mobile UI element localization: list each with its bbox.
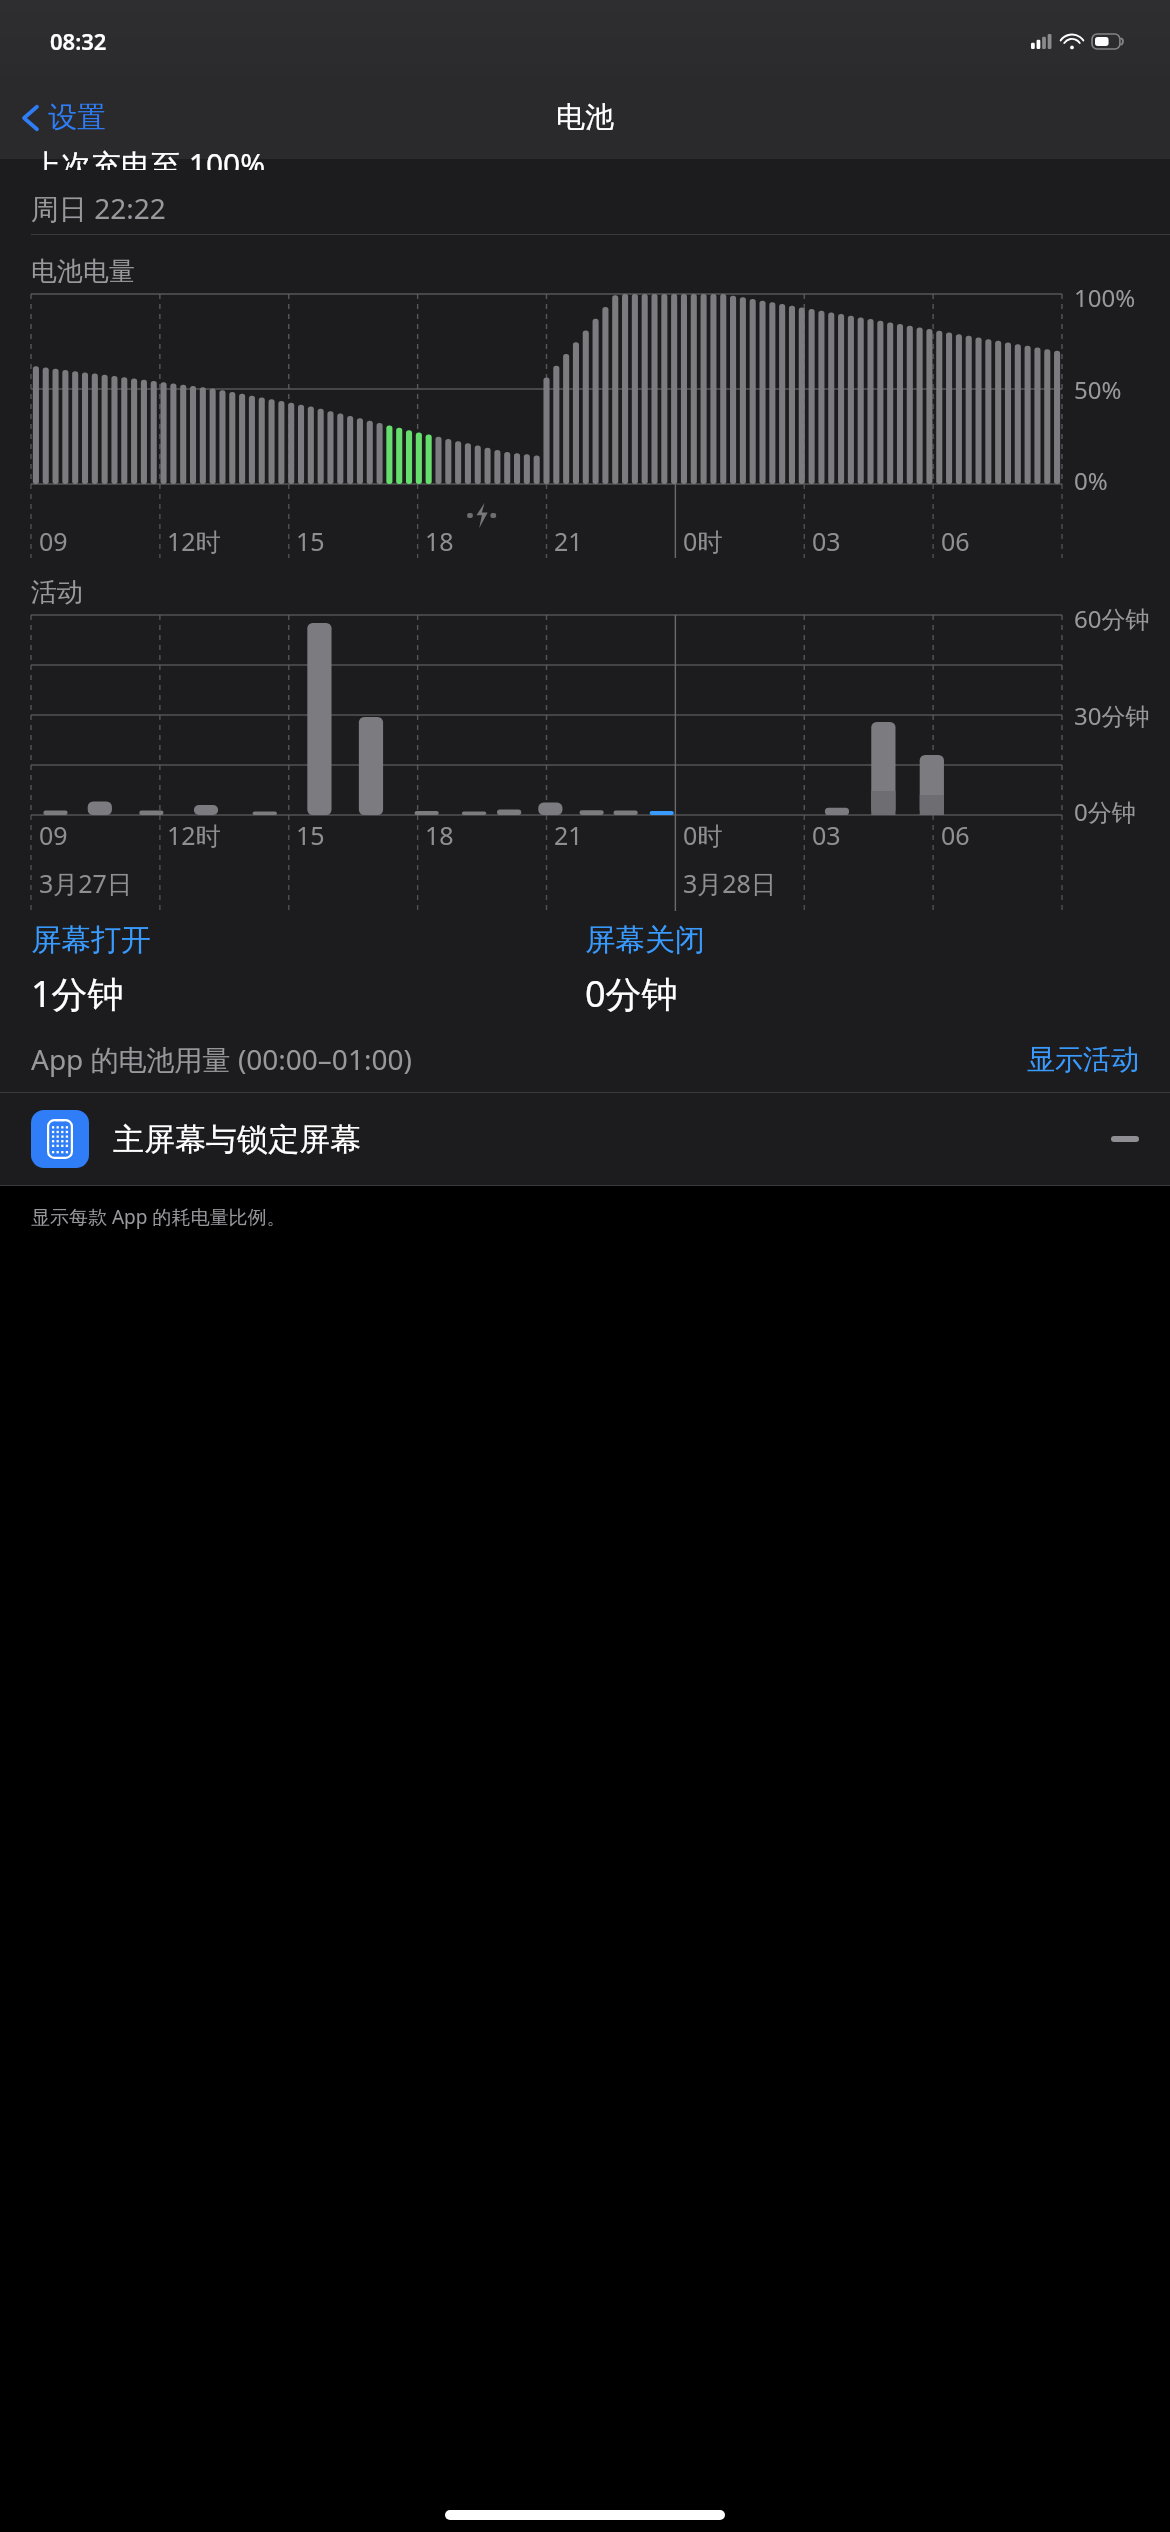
staticText: 主屏幕与锁定屏幕	[113, 1120, 361, 1159]
staticText: 06	[941, 818, 970, 852]
staticText: 03	[812, 818, 841, 852]
staticText: 15	[296, 524, 325, 558]
staticText: 100%	[1074, 281, 1136, 314]
staticText: 18	[425, 524, 454, 558]
button[interactable]: 主屏幕与锁定屏幕	[0, 1093, 1170, 1185]
staticText: 显示活动	[1027, 1042, 1139, 1077]
staticText: 电池	[556, 99, 614, 136]
staticText: 50%	[1074, 373, 1122, 406]
staticText: 0%	[1074, 464, 1108, 497]
staticText: 08:32	[50, 26, 107, 56]
staticText: 1分钟	[31, 969, 124, 1018]
other: 返回	[22, 103, 39, 133]
staticText: 0分钟	[585, 969, 678, 1018]
staticText: 09	[39, 524, 68, 558]
staticText: 0时	[683, 818, 723, 852]
staticText: 15	[296, 818, 325, 852]
button[interactable]: 屏幕关闭	[585, 921, 1139, 1018]
staticText: App 的电池用量 (00:00–01:00)	[31, 1040, 412, 1078]
staticText: 03	[812, 524, 841, 558]
staticText: 06	[941, 524, 970, 558]
staticText: 活动	[31, 576, 83, 609]
button[interactable]: 显示活动	[1027, 1042, 1139, 1077]
staticText: 12时	[167, 524, 221, 558]
staticText: 显示每款 App 的耗电量比例。	[31, 1204, 286, 1230]
button[interactable]: 返回	[0, 91, 120, 144]
staticText: 30分钟	[1074, 699, 1150, 732]
staticText: 3月27日	[39, 866, 132, 900]
staticText: 电池电量	[31, 255, 135, 288]
staticText: 3月28日	[683, 866, 776, 900]
staticText: 上次充电至 100%	[31, 144, 266, 170]
staticText: 0分钟	[1074, 795, 1136, 828]
staticText: 09	[39, 818, 68, 852]
staticText: 屏幕关闭	[585, 921, 705, 959]
staticText: 设置	[48, 99, 106, 136]
staticText: 0时	[683, 524, 723, 558]
button[interactable]: 屏幕打开	[31, 921, 585, 1018]
staticText: 21	[554, 818, 583, 852]
staticText: 21	[554, 524, 583, 558]
staticText: 屏幕打开	[31, 921, 151, 959]
staticText: 12时	[167, 818, 221, 852]
staticText: 18	[425, 818, 454, 852]
staticText: 60分钟	[1074, 602, 1150, 635]
staticText: 周日 22:22	[31, 189, 166, 227]
